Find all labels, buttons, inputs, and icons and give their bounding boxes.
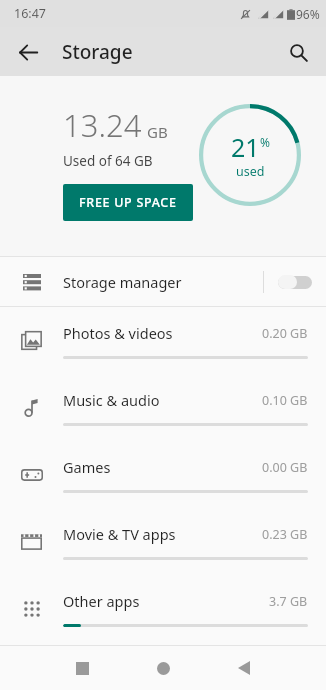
button[interactable]: Storage manager bbox=[0, 257, 326, 306]
staticText: Other apps bbox=[63, 591, 269, 611]
staticText: 0.20 GB bbox=[262, 325, 308, 342]
staticText: 13.24 bbox=[63, 104, 142, 146]
staticText: Games bbox=[63, 457, 262, 477]
staticText: Storage bbox=[62, 39, 133, 65]
button[interactable]: Storage manager toggle bbox=[264, 258, 326, 306]
staticText: Used of 64 GB bbox=[63, 152, 153, 170]
staticText: 0.23 GB bbox=[262, 526, 308, 543]
button[interactable]: FREE UP SPACE bbox=[63, 184, 193, 221]
button[interactable]: Recent apps bbox=[62, 648, 102, 688]
staticText: % bbox=[260, 134, 270, 150]
staticText: Storage manager bbox=[63, 272, 263, 292]
staticText: 21 bbox=[231, 130, 260, 164]
staticText: Movie & TV apps bbox=[63, 524, 262, 544]
staticText: 0.10 GB bbox=[262, 392, 308, 409]
button[interactable]: Back bbox=[224, 648, 264, 688]
staticText: GB bbox=[147, 122, 168, 142]
staticText: 16:47 bbox=[14, 5, 46, 22]
staticText: 0.00 GB bbox=[262, 459, 308, 476]
staticText: Music & audio bbox=[63, 390, 262, 410]
button[interactable]: Home bbox=[143, 648, 183, 688]
staticText: FREE UP SPACE bbox=[79, 194, 177, 211]
staticText: used bbox=[236, 163, 265, 180]
button[interactable]: Games bbox=[0, 441, 326, 508]
staticText: 96% bbox=[296, 6, 320, 22]
button[interactable]: Search bbox=[278, 32, 318, 72]
staticText: 3.7 GB bbox=[269, 593, 308, 610]
button[interactable]: Other apps bbox=[0, 575, 326, 642]
button[interactable]: Music & audio bbox=[0, 374, 326, 441]
button[interactable]: Photos & videos bbox=[0, 307, 326, 374]
button[interactable]: Movie & TV apps bbox=[0, 508, 326, 575]
button[interactable]: Back bbox=[8, 32, 48, 72]
staticText: Photos & videos bbox=[63, 323, 262, 343]
